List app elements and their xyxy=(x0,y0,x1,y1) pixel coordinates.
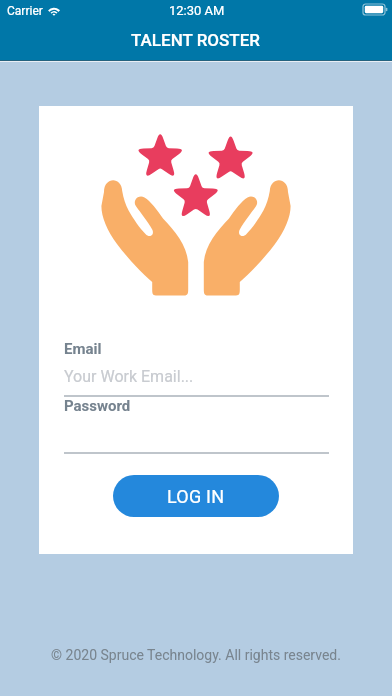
staticText: © 2020 Spruce Technology. All rights res… xyxy=(0,647,392,663)
staticText: Carrier xyxy=(7,4,43,18)
staticText: Password xyxy=(64,397,131,415)
staticText: TALENT ROSTER xyxy=(131,30,261,50)
button[interactable]: LOG IN xyxy=(113,475,279,517)
staticText: LOG IN xyxy=(167,486,225,507)
staticText: Email xyxy=(64,340,102,358)
staticText: 12:30 AM xyxy=(169,3,225,18)
staticText: Your Work Email... xyxy=(64,367,194,386)
